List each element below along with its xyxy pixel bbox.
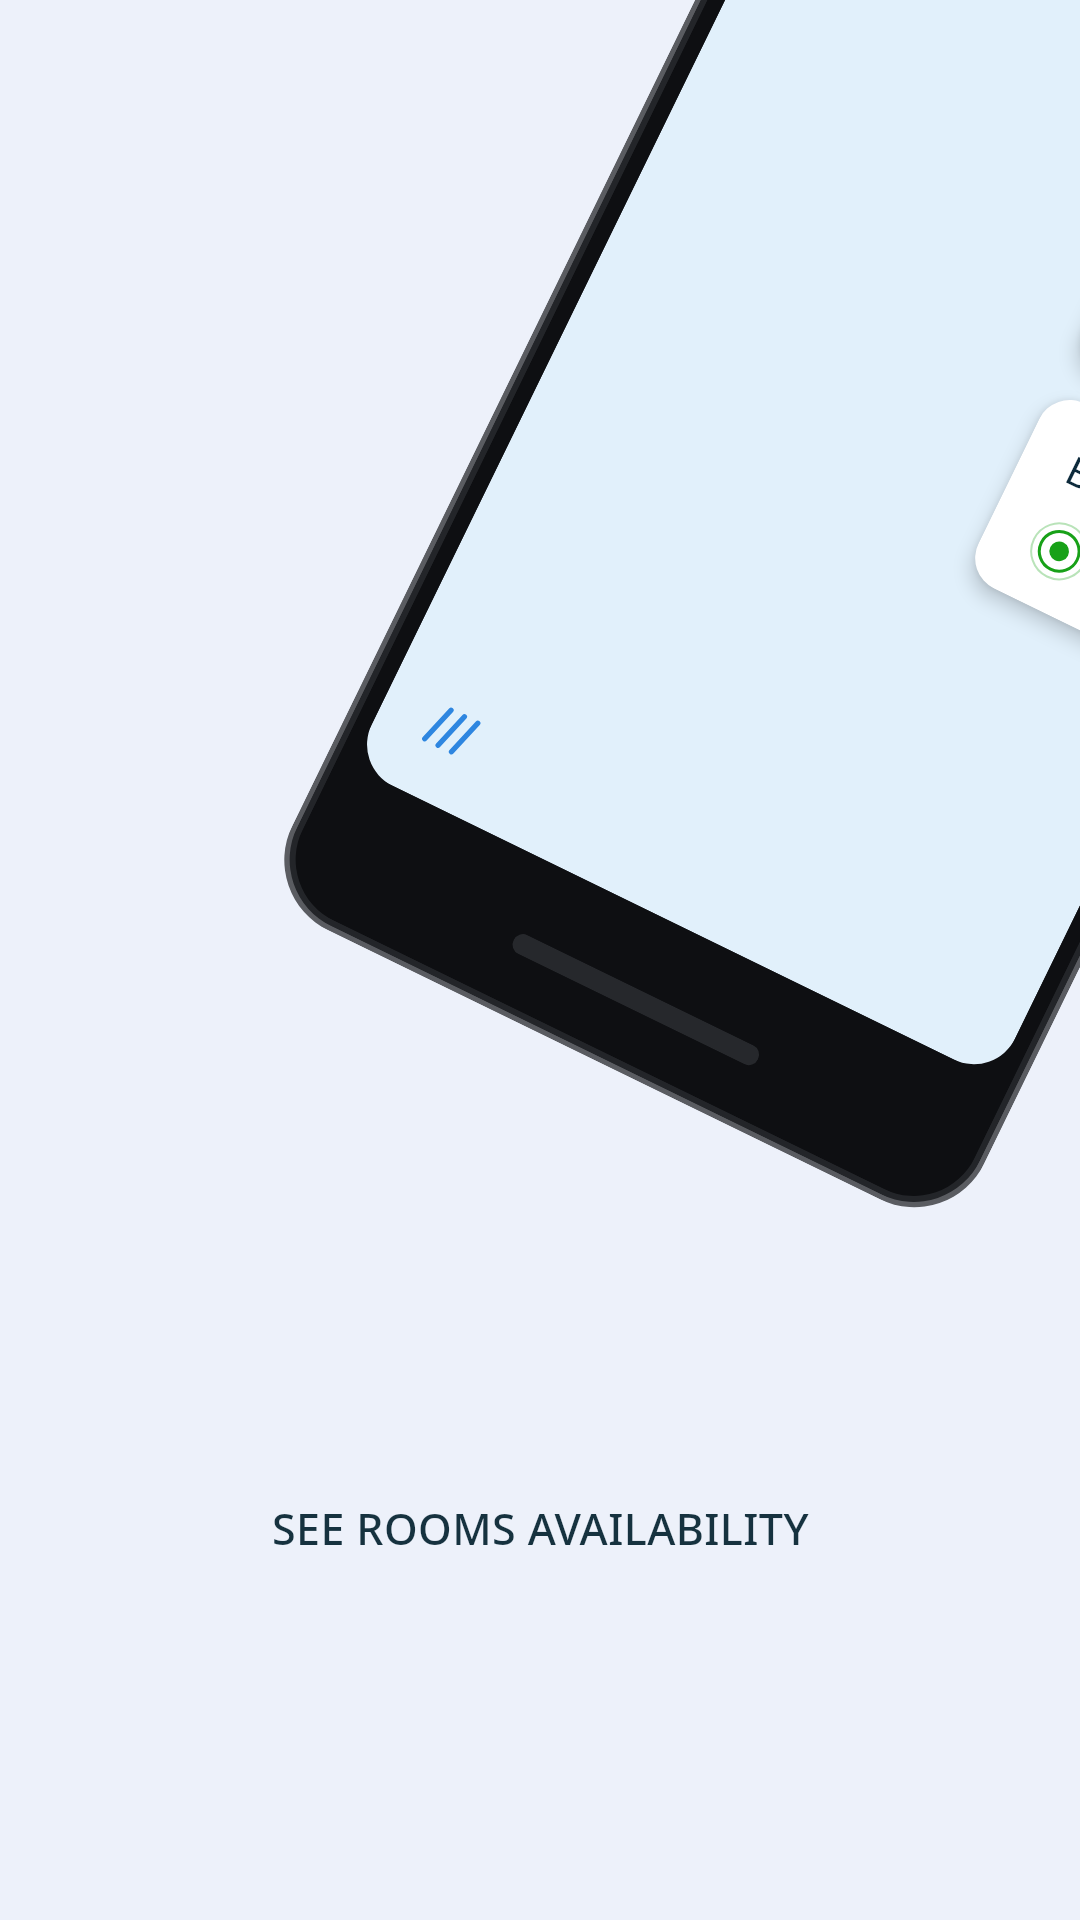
button[interactable]: Berlin bbox=[964, 389, 1080, 683]
staticText: Berlin bbox=[1058, 442, 1080, 539]
button[interactable]: Paris bbox=[1069, 173, 1080, 468]
button[interactable]: SEE ROOMS AVAILABILITY bbox=[272, 1499, 809, 1558]
button[interactable]: App logo bbox=[410, 690, 493, 773]
